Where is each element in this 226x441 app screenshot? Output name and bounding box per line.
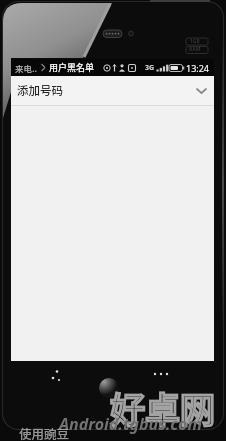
staticText: 1GB [190,38,200,45]
button[interactable]: 添加号码 [11,76,214,105]
staticText: 来电.. [15,62,38,74]
staticText: 使用豌豆 [19,424,70,441]
staticText: 3G [145,63,155,73]
staticText: RAM [189,46,201,53]
staticText: 用户黑名单 [49,61,95,74]
staticText: Android.tgbus.com [59,413,202,435]
staticText: 好卓网 [110,382,216,433]
staticText: 13:24 [186,62,210,74]
staticText: 添加号码 [17,82,63,99]
